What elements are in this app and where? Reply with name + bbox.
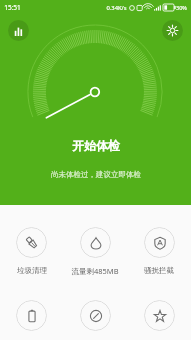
staticText: 流量剩485MB: [71, 266, 119, 276]
staticText: 骚扰拦截: [144, 266, 174, 275]
button[interactable]: 开始体检: [56, 134, 136, 157]
other: Junk cleanup: [16, 227, 47, 258]
button[interactable]: Battery: [0, 298, 63, 340]
button[interactable]: Block harassment: [127, 225, 191, 277]
staticText: 开始体检: [72, 138, 120, 153]
button[interactable]: Settings: [162, 20, 183, 41]
staticText: 30%: [176, 4, 187, 11]
staticText: 0.34K/s: [106, 4, 127, 12]
other: Virus scan: [80, 300, 111, 331]
other: Block harassment: [144, 227, 175, 258]
other: Battery: [16, 300, 47, 331]
button[interactable]: Junk cleanup: [0, 225, 63, 277]
button[interactable]: Data usage: [63, 225, 127, 278]
button[interactable]: Virus scan: [63, 298, 127, 340]
other: Data usage: [80, 227, 111, 258]
staticText: 尚未体检过，建议立即体检: [51, 170, 141, 179]
staticText: 垃圾清理: [17, 266, 47, 275]
button[interactable]: Permissions: [127, 298, 191, 340]
button[interactable]: Statistics: [8, 20, 29, 41]
staticText: 15:51: [4, 3, 21, 12]
other: Permissions: [144, 300, 175, 331]
